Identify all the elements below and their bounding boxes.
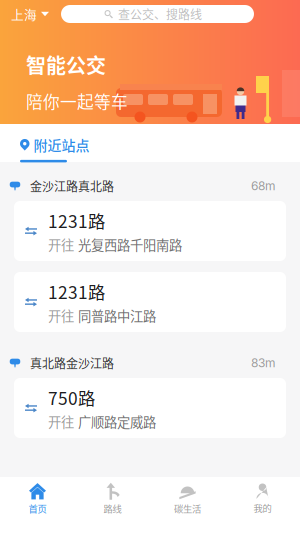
staticText: 首页 xyxy=(28,502,46,515)
staticText: 附近站点 xyxy=(33,135,89,155)
staticText: 查公交、搜路线 xyxy=(118,5,202,23)
staticText: 广顺路定威路 xyxy=(78,412,156,431)
staticText: 83m xyxy=(251,356,276,370)
staticText: 路线 xyxy=(103,502,121,515)
staticText: 陪你一起等车 xyxy=(26,89,128,113)
staticText: 上海 xyxy=(11,5,37,23)
staticText: 智能公交 xyxy=(26,50,106,79)
button[interactable]: 金沙江路真北路 xyxy=(0,171,300,201)
staticText: 1231路 xyxy=(48,208,105,233)
button[interactable]: 上海 xyxy=(0,3,61,25)
button[interactable]: 真北路金沙江路 xyxy=(0,348,300,378)
button[interactable]: 路线 xyxy=(75,477,150,521)
staticText: 碳生活 xyxy=(174,502,201,515)
staticText: 1231路 xyxy=(48,279,105,304)
button[interactable]: 附近站点 xyxy=(0,121,89,165)
button[interactable]: 1231路 xyxy=(14,201,286,261)
button[interactable]: 1231路 xyxy=(14,272,286,332)
staticText: 我的 xyxy=(253,501,271,515)
staticText: 光复西路千阳南路 xyxy=(78,235,182,254)
button[interactable]: 我的 xyxy=(225,477,300,521)
staticText: 真北路金沙江路 xyxy=(30,354,114,372)
button[interactable]: 750路 xyxy=(14,378,286,438)
staticText: 68m xyxy=(251,179,276,193)
button[interactable]: 碳生活 xyxy=(150,477,225,521)
button[interactable]: 首页 xyxy=(0,477,75,521)
staticText: 开往 xyxy=(48,235,74,254)
staticText: 750路 xyxy=(48,385,95,410)
staticText: 开往 xyxy=(48,412,74,431)
button[interactable]: 查公交、搜路线 xyxy=(61,5,254,23)
staticText: 开往 xyxy=(48,306,74,325)
staticText: 同普路中江路 xyxy=(78,306,156,325)
staticText: 金沙江路真北路 xyxy=(30,177,114,195)
